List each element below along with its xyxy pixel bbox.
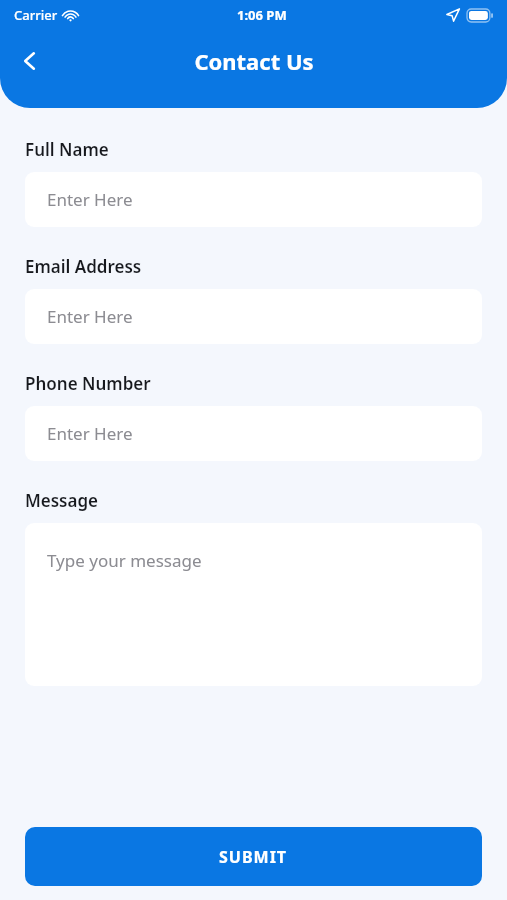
staticText: SUBMIT [219, 846, 288, 868]
staticText: Message [25, 489, 99, 512]
staticText: Contact Us [194, 46, 314, 76]
staticText: Carrier [14, 6, 58, 24]
button[interactable]: Back [8, 39, 52, 83]
button[interactable]: SUBMIT [25, 827, 482, 886]
staticText: Enter Here [47, 305, 133, 328]
button[interactable]: Enter Here [25, 289, 482, 344]
staticText: Enter Here [47, 188, 133, 211]
staticText: Phone Number [25, 372, 151, 395]
staticText: Enter Here [47, 422, 133, 445]
staticText: Email Address [25, 255, 142, 278]
button[interactable]: Type your message [25, 523, 482, 686]
staticText: Full Name [25, 138, 109, 161]
button[interactable]: Enter Here [25, 406, 482, 461]
staticText: 1:06 PM [237, 6, 287, 24]
staticText: Type your message [47, 549, 202, 572]
button[interactable]: Enter Here [25, 172, 482, 227]
